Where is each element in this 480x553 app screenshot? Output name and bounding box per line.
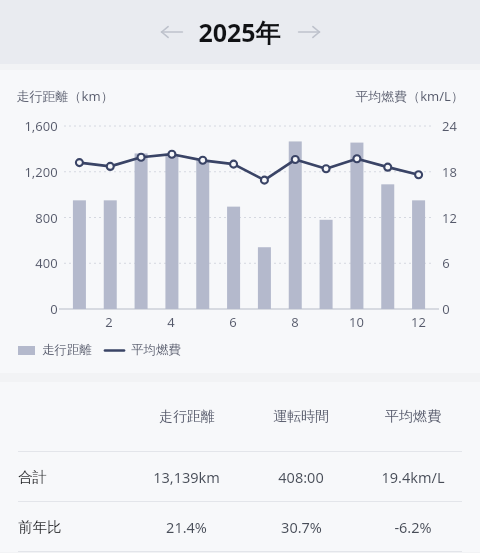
staticText: 12 [411,313,426,331]
staticText: 走行距離（km） [16,87,114,105]
staticText: 21.4% [166,517,207,537]
staticText: 19.4km/L [381,467,445,487]
button[interactable]: 前の年 [154,14,190,50]
staticText: 2 [105,313,113,331]
staticText: 8 [291,313,299,331]
staticText: 18 [442,163,457,181]
staticText: 13,139km [153,467,220,487]
staticText: 24 [442,117,457,135]
staticText: 1,600 [24,117,58,135]
staticText: 運転時間 [273,408,329,426]
staticText: 800 [35,209,58,227]
staticText: -6.2% [394,517,432,537]
staticText: 6 [229,313,237,331]
staticText: 0 [50,300,58,318]
staticText: 平均燃費 [385,408,441,426]
staticText: 30.7% [281,517,322,537]
staticText: 平均燃費（km/L） [355,87,464,105]
staticText: 2025年 [198,15,281,49]
staticText: 1,200 [24,163,58,181]
staticText: 合計 [18,468,47,486]
staticText: 走行距離 [42,342,92,358]
button[interactable]: 合計 [0,452,480,501]
staticText: 4 [167,313,175,331]
staticText: 平均燃費 [131,342,181,358]
button[interactable]: 前年比 [0,502,480,551]
staticText: 400 [35,254,58,272]
staticText: 走行距離 [159,408,215,426]
staticText: 12 [442,209,457,227]
staticText: 6 [442,254,450,272]
staticText: 10 [349,313,364,331]
staticText: 0 [442,300,450,318]
button[interactable]: 次の年 [291,14,327,50]
staticText: 前年比 [18,518,62,536]
staticText: 408:00 [278,467,324,487]
